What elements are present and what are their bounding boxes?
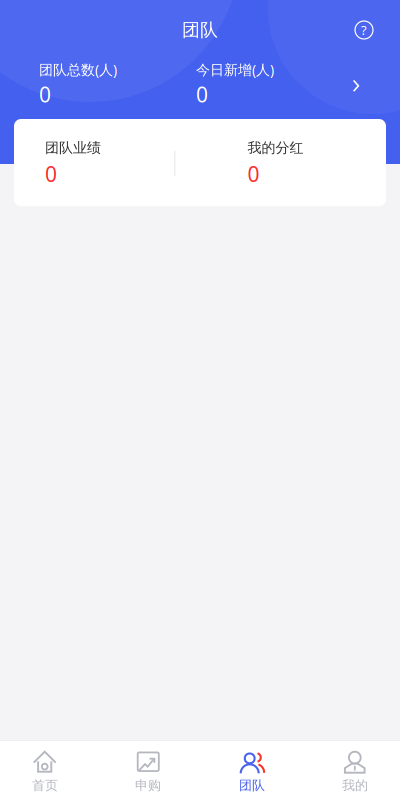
button[interactable]: 首页 (0, 739, 100, 796)
button[interactable]: 团队 (200, 739, 300, 796)
staticText: 0 (247, 160, 259, 188)
staticText: 0 (196, 80, 208, 109)
button[interactable]: 团队总数(人) (0, 54, 400, 109)
button[interactable]: Help (341, 9, 400, 45)
staticText: 首页 (32, 777, 58, 794)
button[interactable]: 申购 (100, 739, 200, 796)
staticText: 我的 (342, 777, 368, 794)
staticText: 0 (45, 160, 57, 188)
staticText: 团队总数(人) (39, 60, 117, 79)
staticText: 0 (39, 80, 51, 109)
staticText: 团队 (239, 777, 265, 794)
staticText: ? (361, 21, 367, 39)
staticText: 今日新增(人) (196, 60, 274, 79)
staticText: 团队 (182, 19, 218, 41)
staticText: 我的分红 (247, 139, 303, 157)
button[interactable]: 我的 (300, 739, 400, 796)
staticText: 申购 (135, 777, 161, 794)
staticText: 团队业绩 (45, 139, 101, 157)
